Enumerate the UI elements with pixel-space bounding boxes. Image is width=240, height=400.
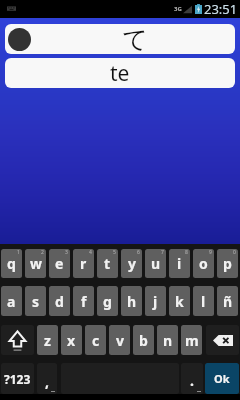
button[interactable]: ?123 [1,363,34,394]
button[interactable]: ñ [217,286,238,316]
button[interactable]: Ok [205,363,239,394]
staticText: te [110,59,130,88]
staticText: p [223,254,232,273]
button[interactable]: i [169,249,190,278]
staticText: 9 [209,249,212,256]
button[interactable]: x [61,325,82,355]
staticText: 23:51 [204,0,238,18]
staticText: 3G [174,5,182,13]
button[interactable]: p [217,249,238,278]
staticText: k [175,292,184,311]
staticText: i [177,254,182,273]
button[interactable]: c [85,325,106,355]
button[interactable]: d [49,286,70,316]
staticText: l [201,292,206,311]
staticText: 2 [41,249,44,256]
button[interactable]: e [49,249,70,278]
staticText: r [80,254,87,273]
button[interactable]: h [121,286,142,316]
staticText: q [7,254,16,273]
staticText: 4 [89,249,92,256]
staticText: b [139,331,148,350]
staticText: f [81,292,87,311]
staticText: y [128,254,136,273]
staticText: ?123 [4,371,31,387]
button[interactable]: z [37,325,58,355]
button[interactable]: t [97,249,118,278]
staticText: 0 [233,249,236,256]
button[interactable]: te [5,58,235,88]
staticText: h [127,292,137,311]
staticText: s [32,292,40,311]
staticText: 7 [161,249,164,256]
staticText: o [199,254,208,273]
staticText: 5 [113,249,116,256]
staticText: g [103,292,112,311]
staticText: m [185,331,199,350]
button[interactable]: j [145,286,166,316]
staticText: w [30,254,42,273]
button[interactable]: q [1,249,22,278]
button[interactable]: o [193,249,214,278]
staticText: u [151,254,161,273]
button[interactable]: て [5,24,235,54]
staticText: x [67,331,76,350]
button[interactable]: f [73,286,94,316]
staticText: 8 [185,249,188,256]
staticText: j [153,292,158,311]
staticText: t [104,254,111,273]
button[interactable]: m [181,325,202,355]
button[interactable]: a [1,286,22,316]
staticText: ñ [223,292,233,311]
button[interactable]: k [169,286,190,316]
staticText: d [55,292,64,311]
button[interactable]: u [145,249,166,278]
staticText: 1 [17,249,20,256]
button[interactable]: comma [37,363,57,394]
staticText: a [7,292,16,311]
button[interactable]: Backspace [206,325,239,355]
button[interactable]: s [25,286,46,316]
button[interactable]: n [157,325,178,355]
staticText: n [163,331,173,350]
staticText: z [44,331,51,350]
staticText: Ok [214,371,230,386]
button[interactable]: g [97,286,118,316]
staticText: . [190,371,194,390]
button[interactable]: v [109,325,130,355]
button[interactable]: y [121,249,142,278]
staticText: e [55,254,64,273]
button[interactable]: Shift [1,325,34,355]
staticText: c [92,331,100,350]
staticText: て [33,24,235,54]
staticText: 3 [65,249,68,256]
button[interactable]: period [181,363,203,394]
staticText: , [45,372,49,391]
staticText: 6 [137,249,140,256]
button[interactable]: b [133,325,154,355]
staticText: v [116,331,124,350]
button[interactable]: l [193,286,214,316]
button[interactable]: w [25,249,46,278]
button[interactable]: r [73,249,94,278]
